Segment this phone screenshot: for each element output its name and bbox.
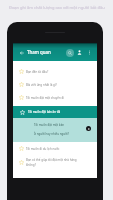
button[interactable]: Bạn đến từ đâu? bbox=[13, 65, 97, 78]
button[interactable]: Tôi muốn đặt một chuyến đi bbox=[13, 91, 97, 104]
staticText: Tôi muốn đặt một bàn bbox=[34, 123, 65, 127]
button[interactable]: Tôi muốn đi du lịch nước bbox=[13, 142, 97, 155]
staticText: Ít người hay nhiều người? bbox=[34, 132, 69, 136]
staticText: Đoạn ghi âm chất lượng cao với một người… bbox=[9, 5, 105, 10]
button[interactable]: Bài viết ứng nhất là gì? bbox=[13, 78, 97, 91]
button[interactable]: Back bbox=[18, 49, 25, 56]
staticText: Tham quan bbox=[27, 49, 51, 55]
staticText: Bạn có thể giúp tôi đặt một nhà hàng bbox=[26, 158, 77, 162]
staticText: Tôi muốn đặt một chuyến đi bbox=[26, 96, 65, 100]
staticText: Tôi muốn đặt bàn ăn tối bbox=[28, 110, 61, 114]
staticText: không? bbox=[26, 163, 36, 167]
button[interactable]: Bạn có thể giúp tôi đặt một nhà hàng bbox=[13, 155, 97, 170]
staticText: Bạn đến từ đâu? bbox=[26, 70, 49, 74]
button[interactable]: Search bbox=[65, 48, 74, 57]
staticText: Tôi muốn đi du lịch nước bbox=[26, 147, 60, 151]
button[interactable]: More options bbox=[85, 48, 94, 57]
staticText: Bài viết ứng nhất là gì? bbox=[26, 83, 57, 87]
button[interactable]: Play audio bbox=[86, 126, 91, 131]
button[interactable]: Tôi muốn đặt bàn ăn tối bbox=[13, 106, 97, 118]
button[interactable]: Account bbox=[75, 48, 84, 57]
